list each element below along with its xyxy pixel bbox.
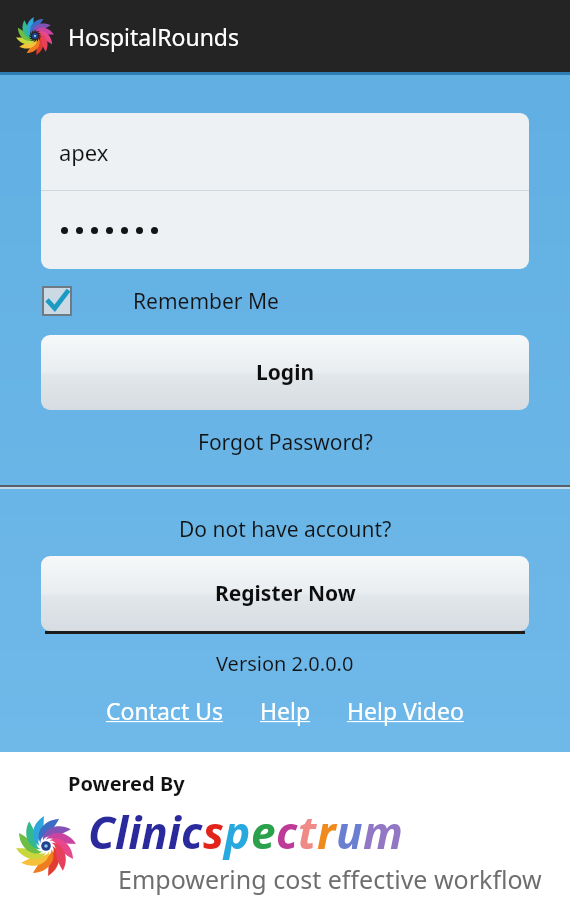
staticText: HospitalRounds (68, 21, 240, 52)
button[interactable]: Remember Me checkbox (41, 285, 73, 317)
staticText: Forgot Password? (198, 428, 373, 457)
staticText: Contact Us (106, 695, 224, 726)
button[interactable]: Help (256, 693, 315, 728)
other: App logo (16, 17, 54, 55)
staticText: apex (59, 137, 109, 167)
button[interactable]: Login (41, 335, 529, 410)
button[interactable]: Help Video (343, 693, 468, 728)
staticText: c (276, 802, 298, 862)
staticText: Register Now (215, 579, 356, 608)
staticText: Do not have account? (179, 515, 392, 544)
button[interactable]: Forgot Password? (194, 424, 377, 461)
button[interactable]: Contact Us (102, 693, 228, 728)
staticText: t (298, 802, 317, 862)
staticText: Empowering cost effective workflow (118, 862, 542, 896)
button[interactable]: Remember Me (133, 287, 279, 316)
staticText: Help Video (347, 695, 464, 726)
staticText: Help (260, 695, 311, 726)
staticText: Remember Me (133, 287, 279, 316)
staticText: m (363, 802, 403, 862)
button[interactable] (41, 191, 529, 269)
staticText: r (317, 802, 336, 862)
staticText: e (251, 802, 276, 862)
staticText: u (336, 802, 363, 862)
button[interactable]: Register Now (41, 556, 529, 631)
staticText: Version 2.0.0.0 (216, 650, 354, 677)
button[interactable]: apex (41, 113, 529, 190)
staticText: Login (256, 358, 315, 387)
staticText: Powered By (68, 770, 185, 797)
staticText: s (203, 802, 224, 862)
staticText: p (224, 802, 251, 862)
staticText: Clinic (88, 802, 203, 862)
